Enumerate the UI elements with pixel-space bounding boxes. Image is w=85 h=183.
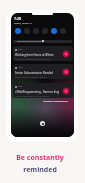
button[interactable]: Quick setting <box>24 28 30 34</box>
staticText: https://perfect.me/job-detail/ <box>15 76 47 79</box>
staticText: https://yourdesired.000-about.fr <box>15 58 50 61</box>
button[interactable]: Quick setting <box>51 28 57 34</box>
staticText: 7:28 <box>14 16 22 21</box>
staticText: Be constantly <box>16 153 64 163</box>
button[interactable]: Quick setting <box>33 28 39 34</box>
button[interactable]: Manage notifications <box>43 99 68 102</box>
staticText: r/WebProgramming - Reverse Engi <box>15 90 60 94</box>
staticText: Jobs <box>18 48 23 51</box>
staticText: reminded <box>23 165 57 175</box>
button[interactable]: Lock <box>40 121 45 126</box>
button[interactable]: Quick setting <box>15 28 21 34</box>
staticText: Working from Home at Where <box>15 53 54 57</box>
staticText: Friday, March 11 <box>14 21 33 24</box>
staticText: Jobs <box>18 85 23 88</box>
staticText: Senior Subcontractor Needed <box>15 71 53 75</box>
staticText: https://redit.com/r/123Program <box>15 95 50 98</box>
staticText: Jobs <box>18 66 23 69</box>
button[interactable]: Quick setting <box>42 28 48 34</box>
button[interactable]: Jobs <box>13 46 73 61</box>
button[interactable]: Quick setting <box>60 28 66 34</box>
button[interactable]: Jobs <box>13 83 73 98</box>
button[interactable]: Brightness <box>13 40 72 43</box>
button[interactable]: Jobs <box>13 64 73 79</box>
